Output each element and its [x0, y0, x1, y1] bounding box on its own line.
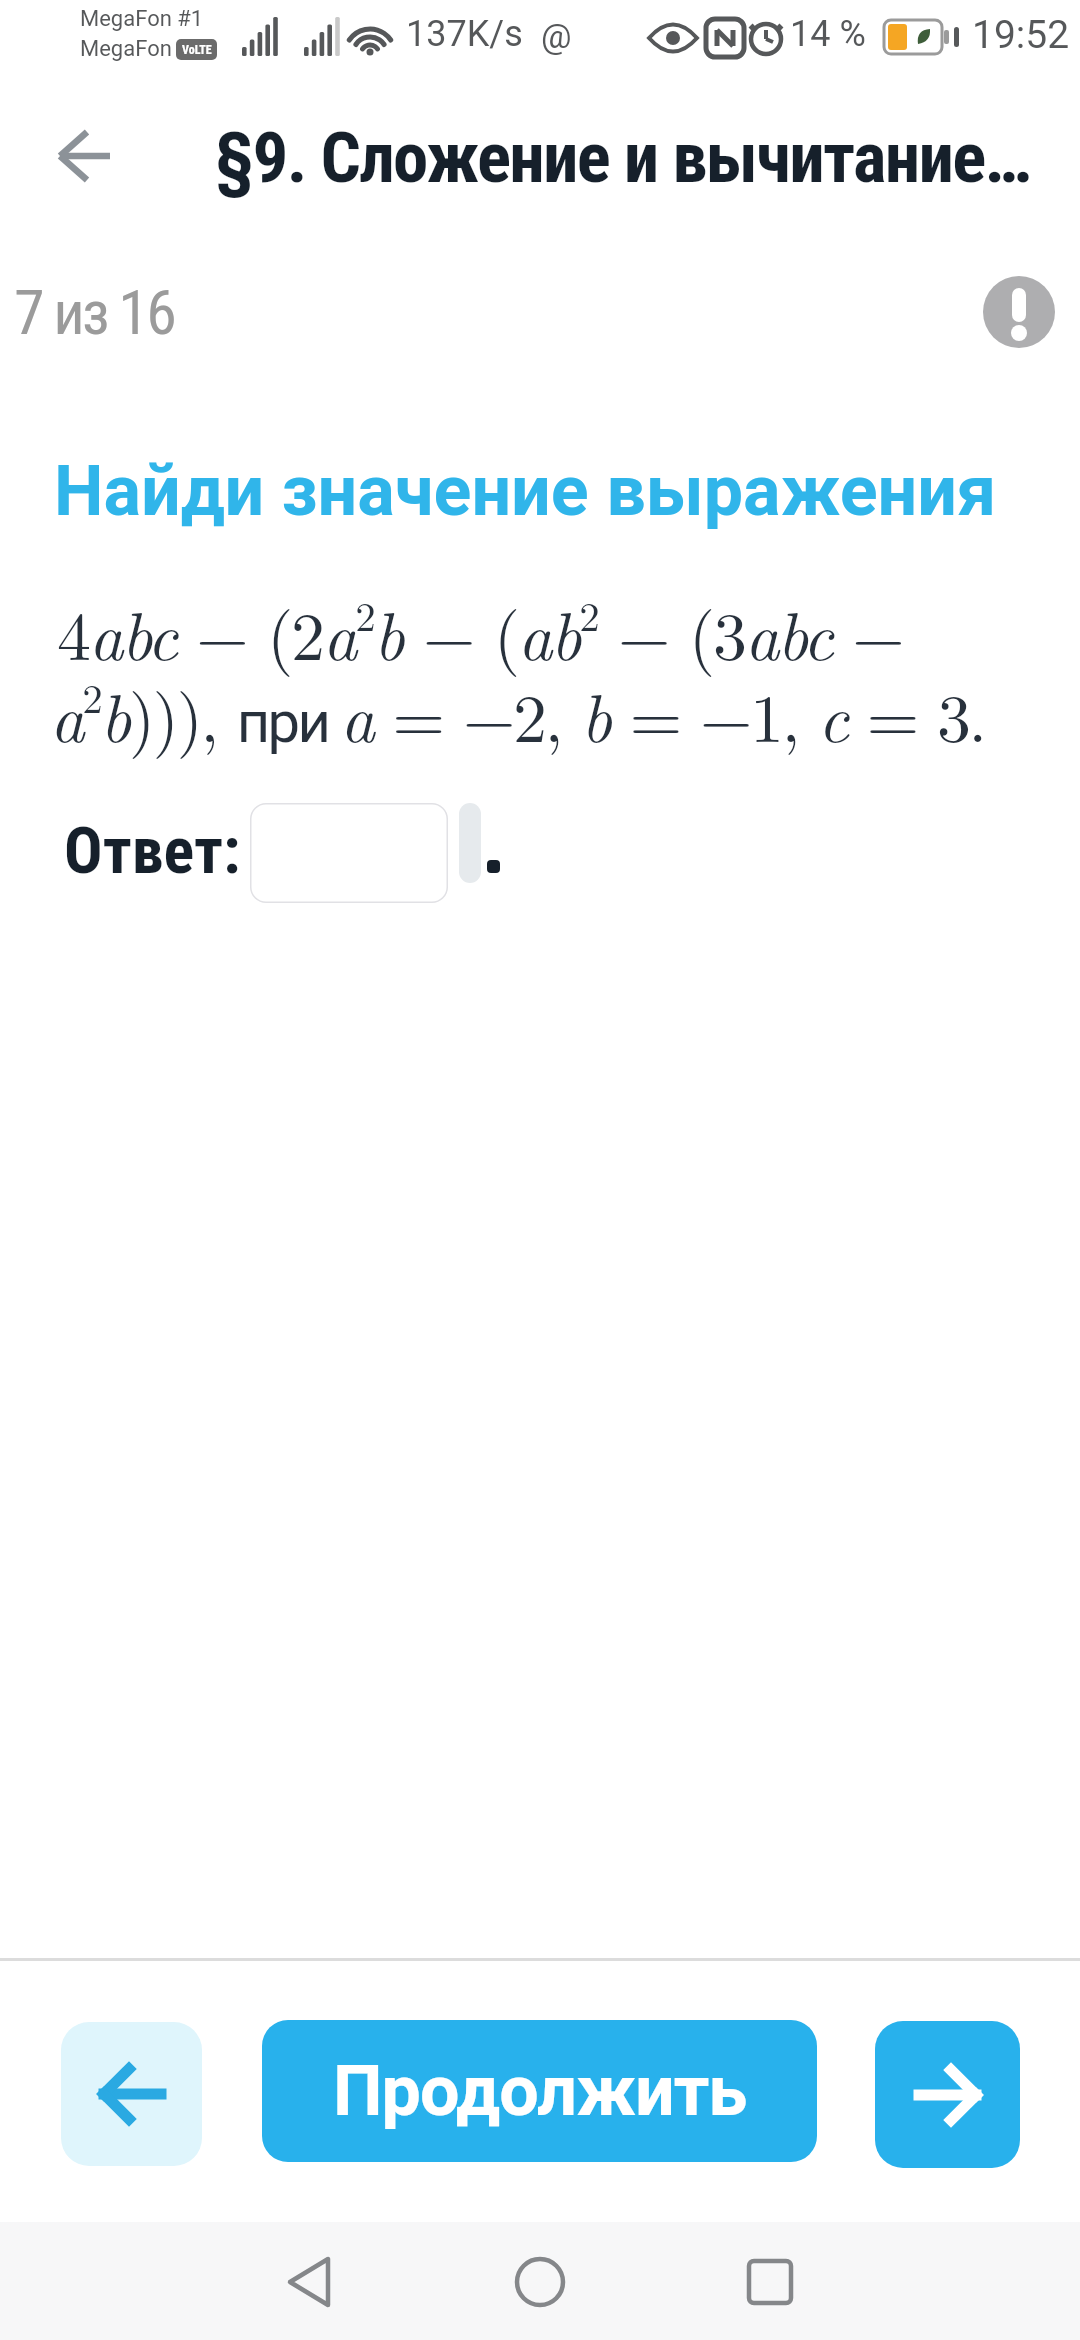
staticText: MegaFon — [80, 36, 172, 62]
staticText: 14 % — [790, 13, 866, 55]
button[interactable] — [40, 116, 130, 196]
staticText: Продолжить — [333, 2050, 747, 2132]
staticText: 137K/s — [406, 13, 523, 55]
button[interactable] — [490, 2232, 590, 2332]
staticText: VoLTE — [182, 43, 212, 57]
staticText: Найди значение выражения — [54, 450, 997, 532]
staticText: 19:52 — [972, 12, 1070, 58]
staticText: 7 из 16 — [14, 276, 174, 349]
staticText: MegaFon #1 — [80, 6, 204, 32]
button[interactable] — [61, 2022, 202, 2166]
staticText: 4abc − (2a2b − (ab2 − (3abc − — [57, 583, 903, 679]
button[interactable]: Продолжить — [262, 2020, 817, 2162]
staticText: @ — [541, 16, 572, 56]
button[interactable] — [720, 2232, 820, 2332]
button[interactable] — [875, 2021, 1020, 2168]
staticText: §9. Сложение и вычитание… — [215, 116, 1030, 199]
button[interactable] — [260, 2232, 360, 2332]
button[interactable] — [250, 803, 448, 903]
button[interactable] — [983, 276, 1055, 348]
staticText: Ответ: — [64, 814, 241, 889]
staticText: a2b))), при a = −2, b = −1, c = 3. — [50, 665, 985, 761]
